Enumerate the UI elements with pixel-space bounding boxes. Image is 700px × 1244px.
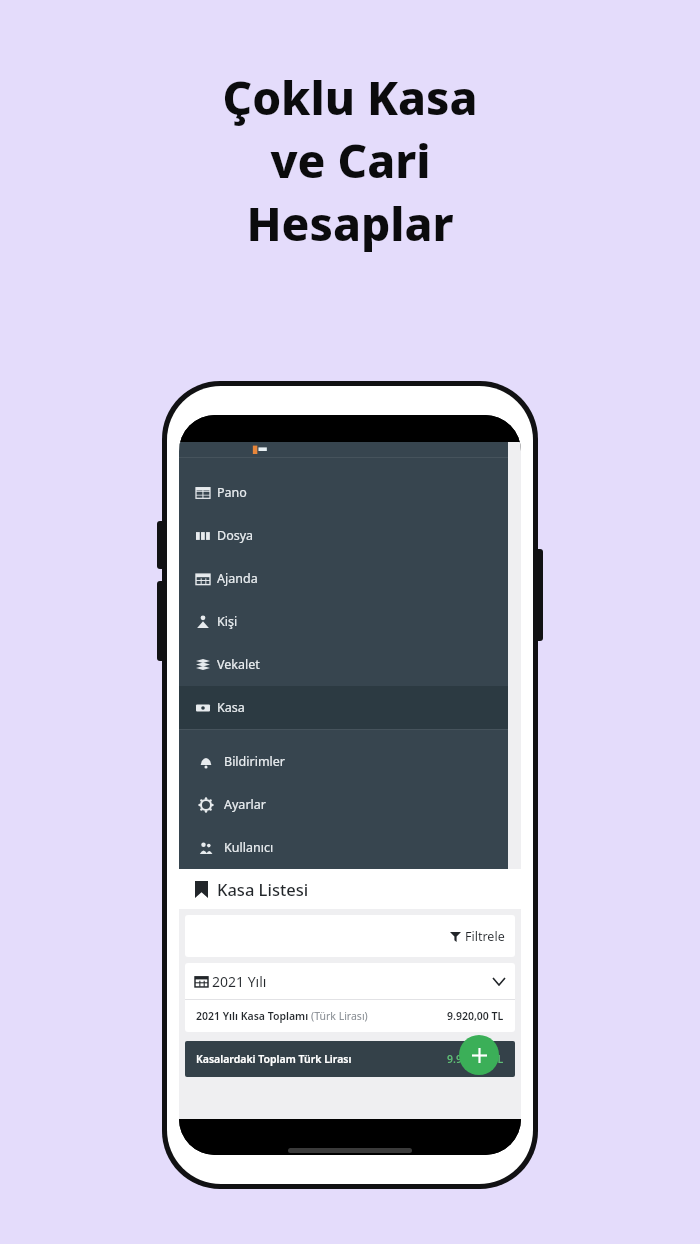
staticText: Ayarlar: [224, 796, 266, 813]
staticText: Kasa Listesi: [217, 878, 309, 900]
staticText: Kasa: [217, 699, 245, 716]
staticText: Hesaplar: [246, 192, 454, 255]
staticText: 9.920,00 TL: [447, 1009, 504, 1023]
button[interactable]: Yeni kasa ekle: [459, 1035, 499, 1075]
button[interactable]: Dosya: [179, 514, 508, 557]
button[interactable]: Bildirimler: [179, 740, 508, 783]
button[interactable]: Kasa: [179, 686, 508, 729]
button[interactable]: Kullanıcı: [179, 826, 508, 869]
button[interactable]: Kasalardaki Toplam Türk Lirası: [185, 1041, 515, 1077]
staticText: Ajanda: [217, 570, 258, 587]
staticText: Vekalet: [217, 656, 260, 673]
button[interactable]: 2021 Yılı Kasa Toplamı: [185, 1000, 515, 1032]
button[interactable]: Vekalet: [179, 643, 508, 686]
staticText: 9.920,00 TL: [447, 1052, 504, 1066]
button[interactable]: Filtrele: [185, 915, 515, 957]
staticText: Çoklu Kasa: [222, 66, 478, 129]
staticText: Pano: [217, 484, 247, 501]
staticText: Dosya: [217, 527, 254, 544]
staticText: Kasalardaki Toplam Türk Lirası: [196, 1052, 352, 1066]
staticText: ve Cari: [270, 129, 431, 192]
staticText: (Türk Lirası): [311, 1009, 368, 1023]
staticText: Kullanıcı: [224, 839, 274, 856]
button[interactable]: Kasa Listesi: [179, 869, 521, 909]
staticText: Filtrele: [465, 928, 505, 945]
button[interactable]: Ayarlar: [179, 783, 508, 826]
button[interactable]: Kişi: [179, 600, 508, 643]
staticText: Kişi: [217, 613, 238, 630]
button[interactable]: Pano: [179, 471, 508, 514]
button[interactable]: Ajanda: [179, 557, 508, 600]
staticText: 2021 Yılı Kasa Toplamı: [196, 1009, 311, 1023]
button[interactable]: 2021 Yılı: [185, 963, 515, 999]
staticText: 2021 Yılı: [212, 972, 267, 991]
staticText: Bildirimler: [224, 753, 286, 770]
